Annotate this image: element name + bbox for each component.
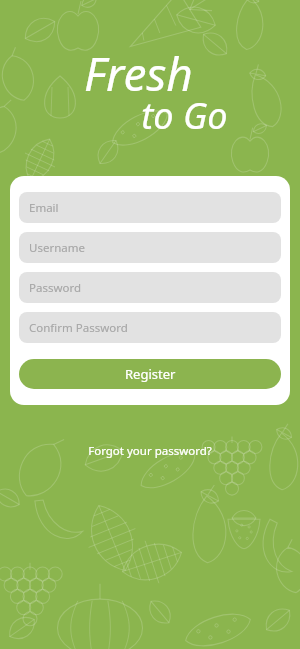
staticText: Confirm Password (29, 320, 128, 336)
staticText: Email (29, 200, 59, 216)
button[interactable]: Username (19, 232, 281, 263)
button[interactable]: Register (19, 359, 281, 389)
button[interactable]: Email (19, 192, 281, 223)
button[interactable]: Password (19, 272, 281, 303)
staticText: to Go (141, 91, 228, 140)
button[interactable]: Confirm Password (19, 312, 281, 343)
staticText: Username (29, 240, 85, 256)
staticText: Fresh (84, 42, 193, 105)
staticText: Password (29, 280, 82, 296)
staticText: Forgot your password? (88, 443, 212, 459)
staticText: Register (125, 365, 176, 383)
button[interactable]: Forgot your password? (80, 440, 220, 462)
